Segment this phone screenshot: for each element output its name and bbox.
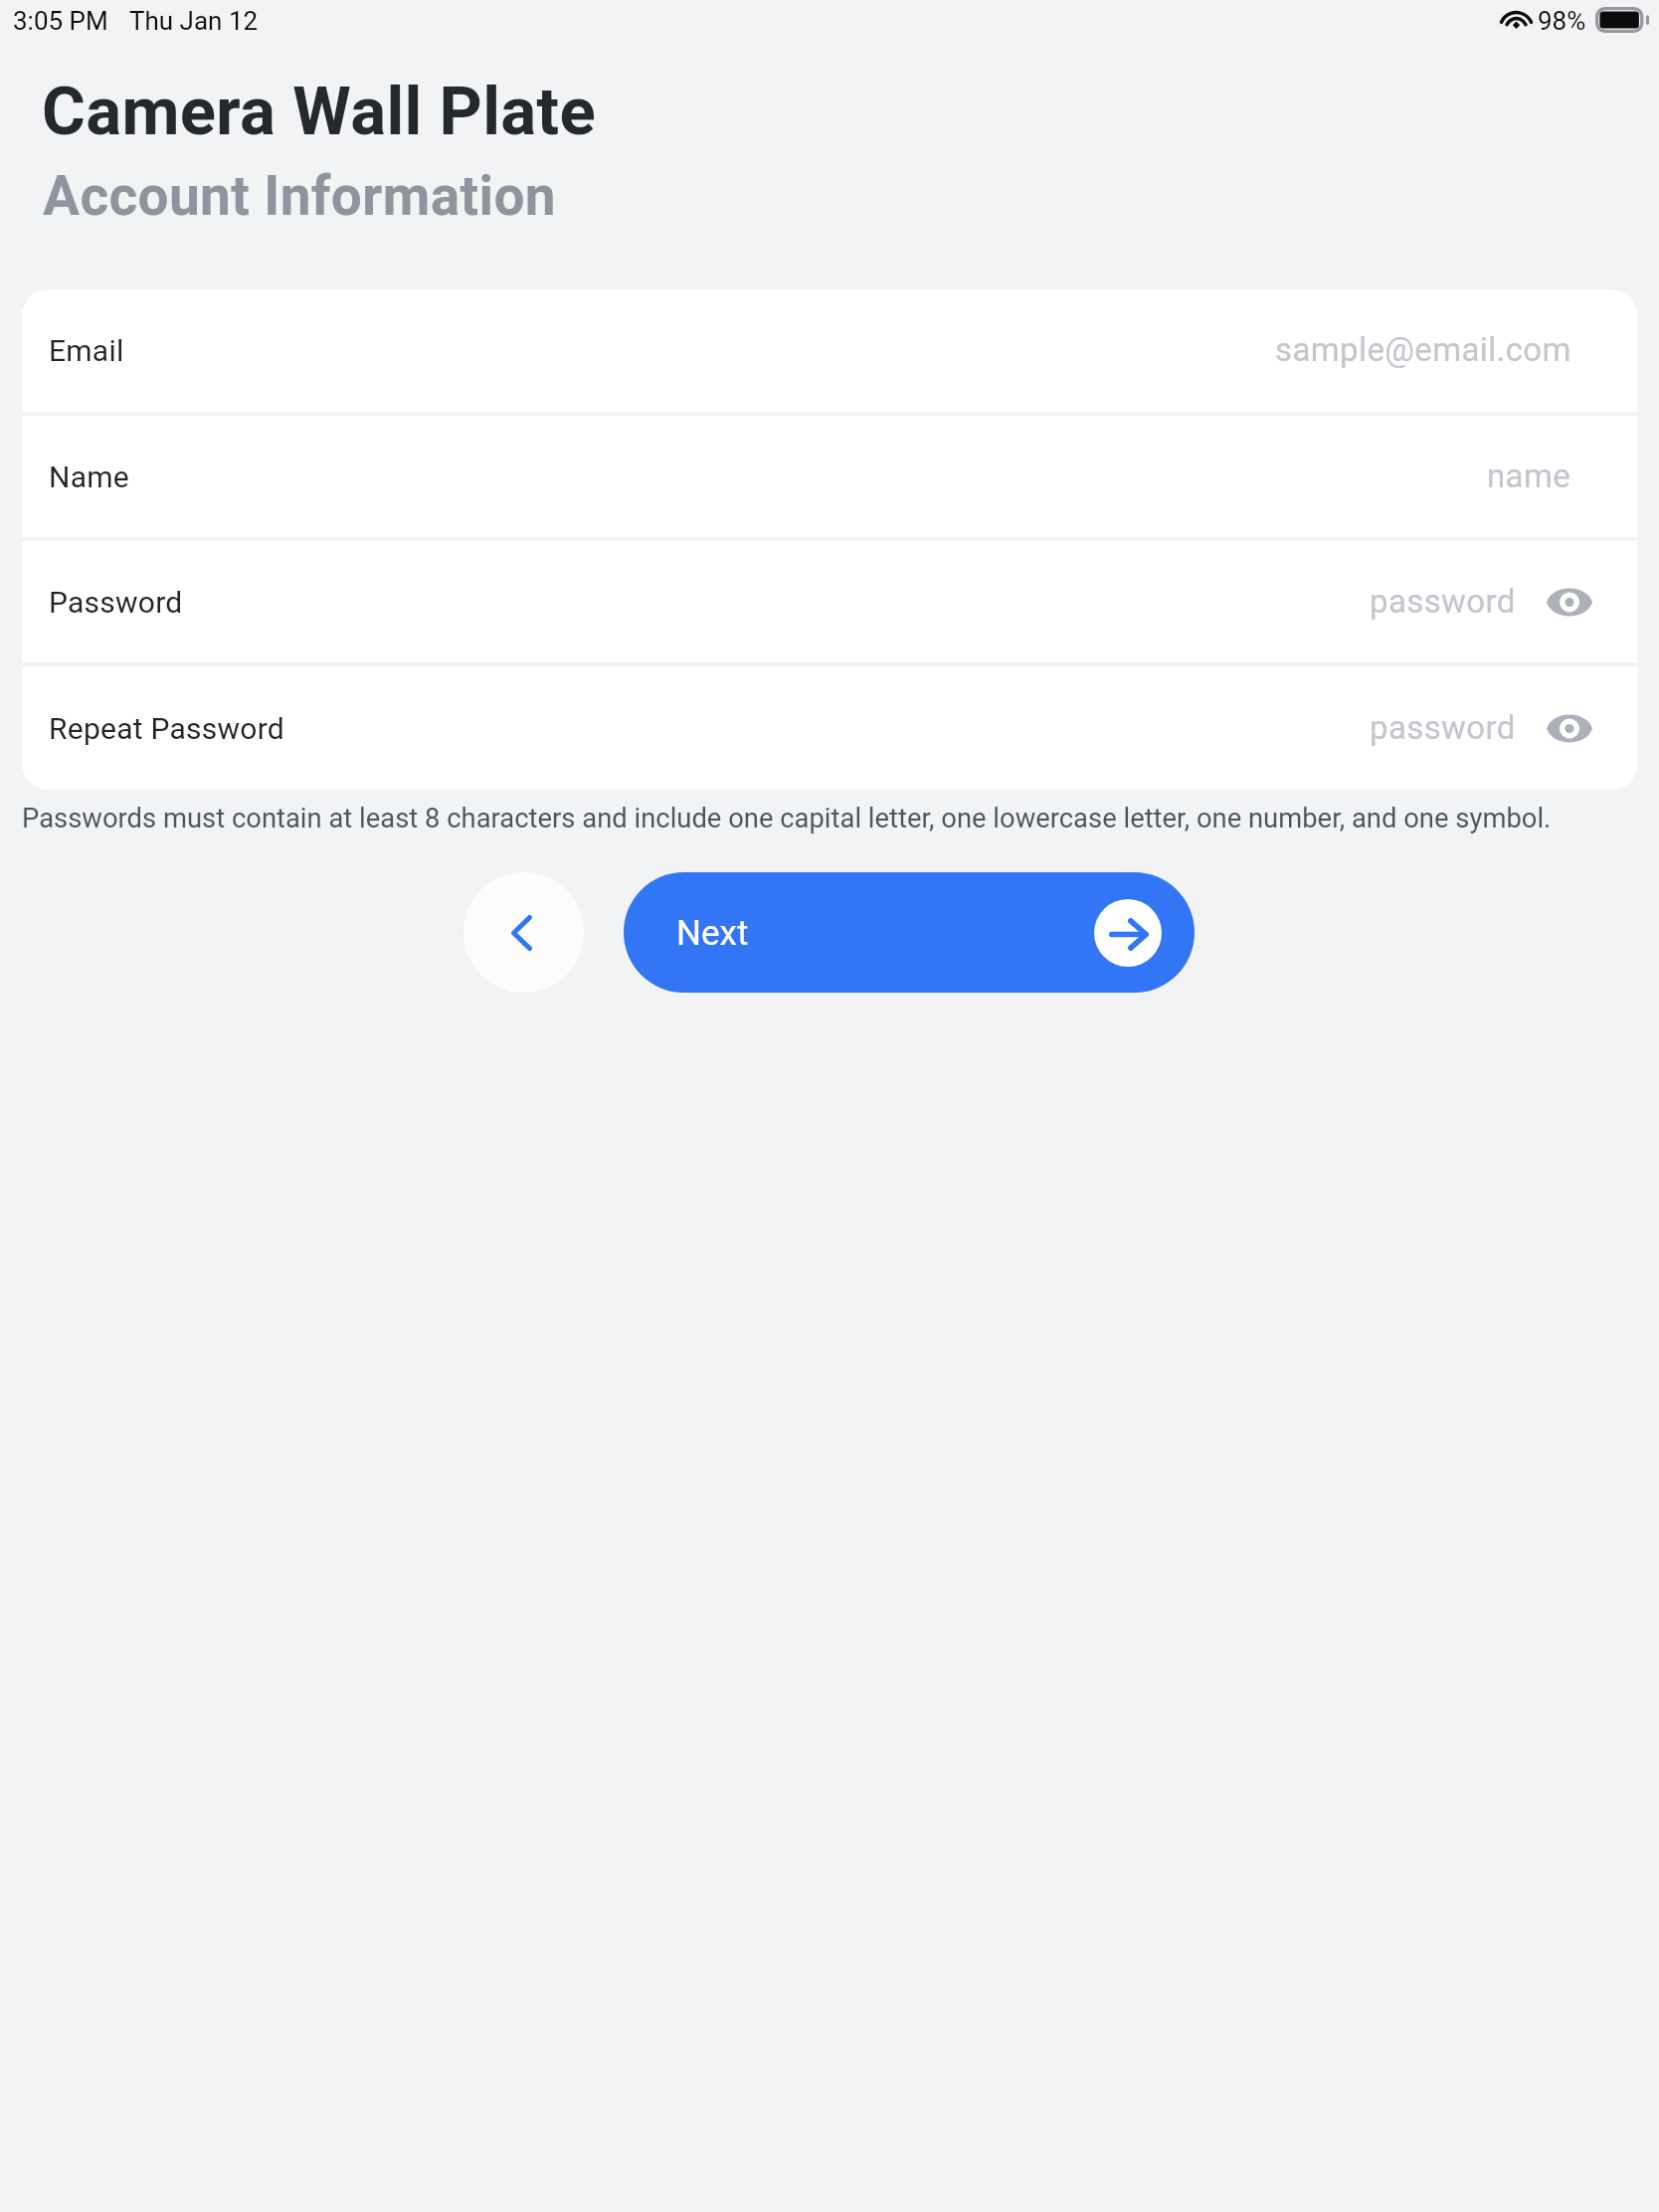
staticText: 98%	[1538, 6, 1586, 36]
staticText: Repeat Password	[49, 711, 284, 746]
staticText: sample@email.com	[1275, 330, 1571, 369]
button[interactable]: Next	[624, 872, 1195, 993]
staticText: password	[1370, 582, 1516, 621]
staticText: Camera Wall Plate	[42, 73, 597, 151]
staticText: Password	[49, 585, 183, 620]
button[interactable]: Back	[463, 872, 584, 993]
staticText: Account Information	[43, 164, 557, 228]
staticText: 3:05 PM	[13, 6, 108, 36]
staticText: name	[1487, 457, 1571, 495]
staticText: password	[1370, 708, 1516, 747]
other: Next	[1094, 899, 1162, 967]
button[interactable]: Name	[22, 416, 1637, 537]
staticText: Name	[49, 460, 129, 494]
staticText: Thu Jan 12	[129, 6, 259, 36]
button[interactable]: Repeat Password	[22, 666, 1637, 790]
button[interactable]: Password	[22, 541, 1637, 662]
staticText: Next	[676, 913, 749, 954]
button[interactable]: Email	[22, 289, 1637, 412]
staticText: Email	[49, 333, 124, 368]
button[interactable]: Show password	[1542, 574, 1597, 630]
button[interactable]: Show password	[1542, 700, 1597, 756]
staticText: Passwords must contain at least 8 charac…	[22, 803, 1552, 834]
